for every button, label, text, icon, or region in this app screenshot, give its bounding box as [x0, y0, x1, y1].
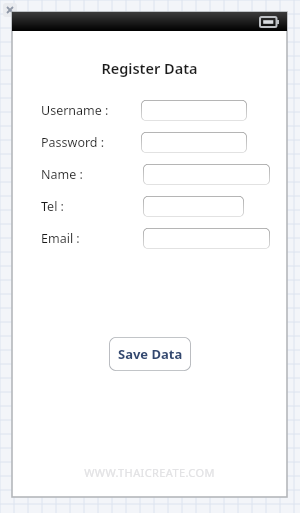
- button[interactable]: Username :: [141, 100, 247, 121]
- staticText: Save Data: [118, 345, 183, 363]
- staticText: Tel :: [41, 198, 64, 215]
- button[interactable]: Password :: [141, 132, 247, 153]
- staticText: Password :: [41, 134, 105, 151]
- button[interactable]: Email :: [143, 228, 270, 249]
- button[interactable]: Close: [3, 3, 17, 17]
- staticText: Email :: [41, 230, 80, 247]
- button[interactable]: Name :: [143, 164, 270, 185]
- button[interactable]: Save Data: [109, 337, 191, 371]
- staticText: Register Data: [12, 58, 287, 78]
- staticText: WWW.THAICREATE.COM: [12, 465, 287, 480]
- button[interactable]: Tel :: [143, 196, 244, 217]
- staticText: Name :: [41, 166, 83, 183]
- staticText: Username :: [41, 102, 109, 119]
- other: Battery: [260, 17, 279, 27]
